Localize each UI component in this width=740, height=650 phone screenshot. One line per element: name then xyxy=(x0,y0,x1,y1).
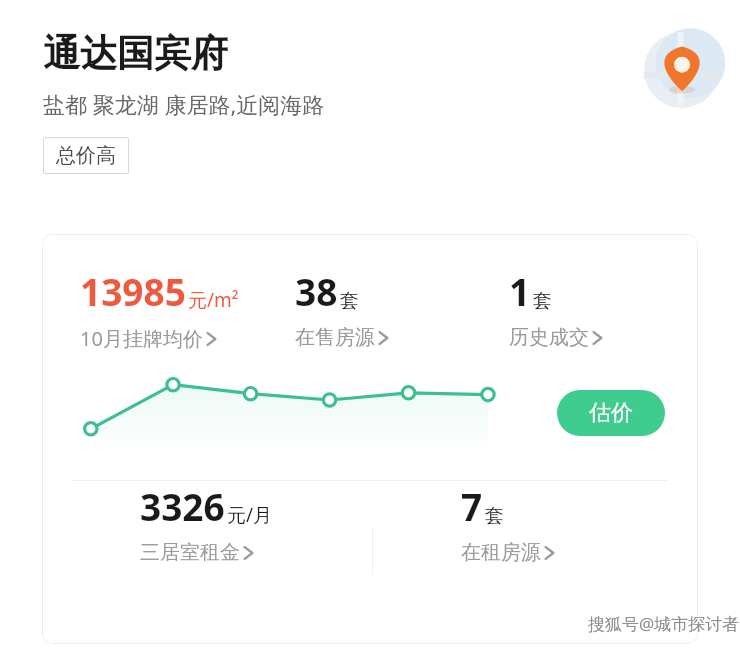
staticText: 3326 xyxy=(140,481,225,531)
staticText: 套 xyxy=(485,504,504,528)
staticText: 元/月 xyxy=(227,502,273,528)
staticText: 10月挂牌均价 xyxy=(80,325,203,352)
button[interactable]: 估价 xyxy=(557,390,665,436)
button[interactable]: 13985 xyxy=(80,266,270,352)
staticText: 13985 xyxy=(80,266,186,316)
staticText: 38 xyxy=(295,266,338,316)
button[interactable]: 总价高 xyxy=(43,137,129,174)
staticText: 盐都 聚龙湖 康居路,近阅海路 xyxy=(43,89,325,119)
staticText: 在售房源 xyxy=(295,325,375,350)
button[interactable]: 3326 xyxy=(140,481,273,565)
button[interactable]: Map location xyxy=(644,32,720,108)
button[interactable]: 38 xyxy=(295,266,500,350)
staticText: 三居室租金 xyxy=(140,540,240,565)
staticText: 元/m² xyxy=(188,287,239,313)
staticText: 搜狐号@城市探讨者 xyxy=(588,612,740,635)
staticText: 在租房源 xyxy=(461,540,541,565)
button[interactable]: 1 xyxy=(509,266,698,350)
staticText: 通达国宾府 xyxy=(43,30,228,77)
staticText: 历史成交 xyxy=(509,325,589,350)
staticText: 1 xyxy=(509,266,531,316)
staticText: 7 xyxy=(461,481,483,531)
button[interactable]: 7 xyxy=(461,481,555,565)
staticText: 总价高 xyxy=(56,143,116,168)
staticText: 套 xyxy=(533,289,552,313)
staticText: 套 xyxy=(340,289,359,313)
staticText: 估价 xyxy=(589,399,633,427)
